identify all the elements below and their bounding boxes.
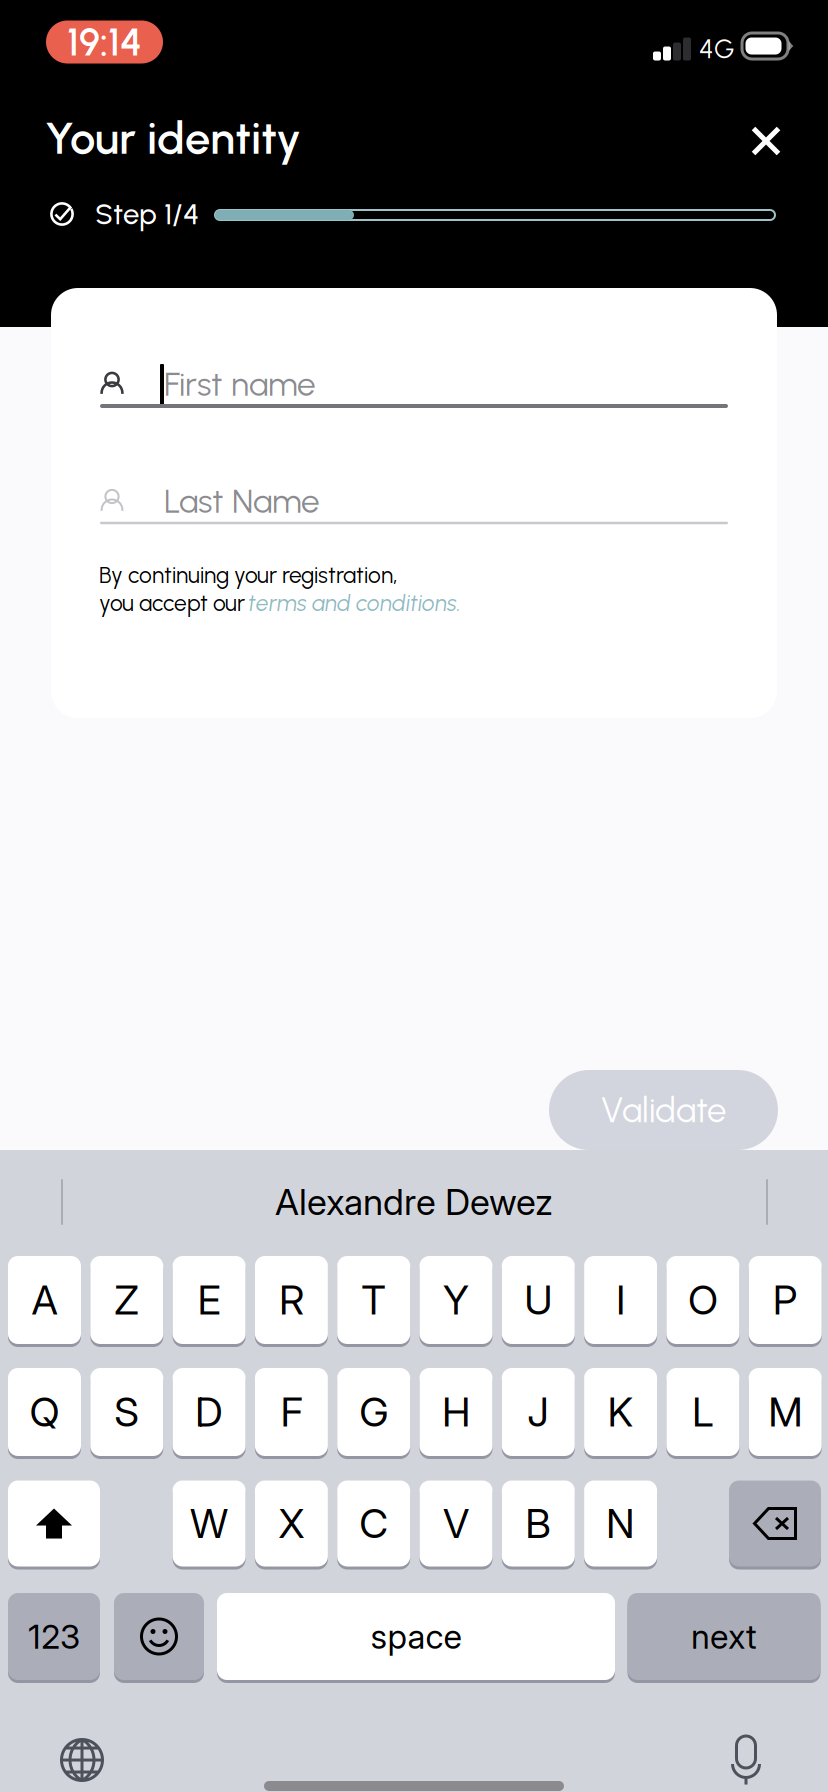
staticText: space <box>370 1616 461 1657</box>
staticText: Y <box>443 1276 469 1324</box>
button[interactable]: Z <box>90 1254 163 1345</box>
staticText: F <box>280 1388 302 1436</box>
staticText: V <box>443 1499 469 1548</box>
staticText: L <box>692 1388 714 1436</box>
staticText: K <box>608 1388 634 1436</box>
button[interactable]: U <box>502 1254 575 1345</box>
staticText: Alexandre Dewez <box>275 1180 553 1224</box>
staticText: Your identity <box>45 111 301 165</box>
button[interactable]: D <box>173 1366 246 1457</box>
button[interactable]: X <box>255 1479 328 1568</box>
button[interactable]: C <box>337 1479 410 1568</box>
staticText: Z <box>114 1276 139 1324</box>
button[interactable]: I <box>584 1254 657 1345</box>
button[interactable]: terms and conditions. <box>248 588 463 618</box>
button[interactable]: Emoji <box>114 1591 204 1681</box>
staticText: A <box>31 1276 57 1324</box>
button[interactable]: Close <box>734 109 798 173</box>
button[interactable]: O <box>666 1254 739 1345</box>
button[interactable]: Shift <box>8 1479 100 1568</box>
button[interactable]: Next keyboard <box>60 1738 104 1782</box>
button[interactable]: Q <box>8 1366 81 1457</box>
button[interactable]: M <box>749 1366 822 1457</box>
staticText: I <box>616 1276 625 1324</box>
staticText: 19:14 <box>67 19 142 65</box>
staticText: J <box>527 1388 549 1436</box>
button[interactable]: R <box>255 1254 328 1345</box>
button[interactable]: next <box>627 1591 820 1681</box>
staticText: U <box>524 1276 552 1324</box>
staticText: E <box>198 1276 221 1324</box>
staticText: terms and conditions. <box>248 589 461 617</box>
button[interactable]: J <box>502 1366 575 1457</box>
button[interactable]: F <box>255 1366 328 1457</box>
staticText: H <box>442 1388 470 1436</box>
staticText: 4G <box>699 33 734 65</box>
button[interactable]: W <box>173 1479 246 1568</box>
staticText: Last Name <box>164 481 320 521</box>
staticText: M <box>768 1388 802 1436</box>
button[interactable]: E <box>173 1254 246 1345</box>
button[interactable]: H <box>419 1366 492 1457</box>
staticText: W <box>190 1499 228 1548</box>
button[interactable]: A <box>8 1254 81 1345</box>
staticText: X <box>278 1499 304 1548</box>
staticText: O <box>688 1276 718 1324</box>
staticText: First name <box>164 364 316 404</box>
button[interactable]: Delete <box>729 1479 821 1568</box>
button[interactable]: Y <box>419 1254 492 1345</box>
button[interactable]: V <box>419 1479 492 1568</box>
staticText: Q <box>29 1388 59 1436</box>
staticText: P <box>773 1276 798 1324</box>
button[interactable]: Dictate <box>729 1734 763 1786</box>
button[interactable]: Validate <box>549 1070 778 1150</box>
staticText: you accept our <box>99 589 245 617</box>
staticText: next <box>691 1616 757 1657</box>
staticText: 123 <box>28 1616 80 1657</box>
button[interactable]: space <box>217 1591 615 1681</box>
button[interactable]: Alexandre Dewez <box>194 1154 634 1250</box>
button[interactable]: G <box>337 1366 410 1457</box>
button[interactable]: S <box>90 1366 163 1457</box>
staticText: D <box>195 1388 223 1436</box>
staticText: S <box>114 1388 139 1436</box>
staticText: G <box>359 1388 388 1436</box>
staticText: By continuing your registration, <box>99 561 398 589</box>
button[interactable]: B <box>502 1479 575 1568</box>
button[interactable]: 123 <box>8 1591 100 1681</box>
button[interactable]: T <box>337 1254 410 1345</box>
button[interactable]: N <box>584 1479 657 1568</box>
staticText: C <box>359 1499 388 1548</box>
staticText: R <box>279 1276 304 1324</box>
staticText: T <box>361 1276 386 1324</box>
button[interactable]: K <box>584 1366 657 1457</box>
staticText: B <box>525 1499 551 1548</box>
staticText: Validate <box>601 1089 726 1131</box>
button[interactable]: L <box>666 1366 739 1457</box>
staticText: Step 1/4 <box>95 196 199 232</box>
button[interactable]: P <box>749 1254 822 1345</box>
staticText: N <box>606 1499 635 1548</box>
